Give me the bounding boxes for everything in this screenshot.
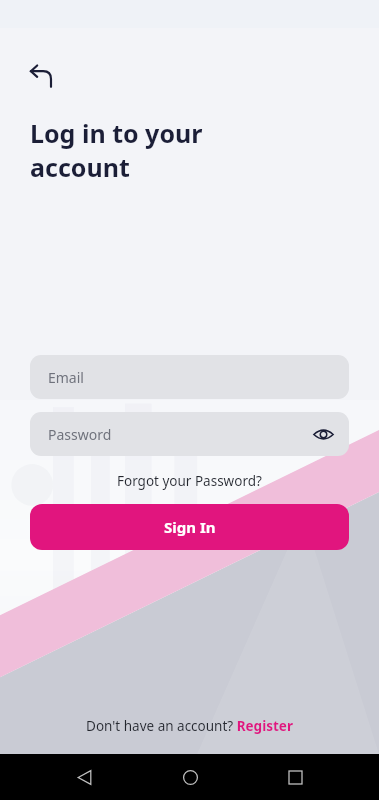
button[interactable]: Email — [30, 355, 349, 399]
staticText: Email — [48, 368, 84, 387]
button[interactable]: Password — [30, 412, 349, 456]
button[interactable]: Back — [20, 54, 64, 98]
button[interactable]: Home — [168, 755, 212, 799]
button[interactable]: Sign In — [30, 504, 349, 550]
button[interactable]: Recent apps — [273, 755, 317, 799]
staticText: Don't have an account? Register — [86, 717, 293, 735]
staticText: Sign In — [164, 517, 216, 537]
button[interactable]: Show password — [305, 416, 341, 452]
button[interactable]: Back — [62, 755, 106, 799]
button[interactable]: Don't have an account? Register — [78, 714, 301, 738]
staticText: Log in to your account — [30, 116, 203, 185]
button[interactable]: Forgot your Password? — [109, 470, 270, 492]
staticText: Password — [48, 425, 112, 444]
staticText: Forgot your Password? — [117, 472, 262, 490]
